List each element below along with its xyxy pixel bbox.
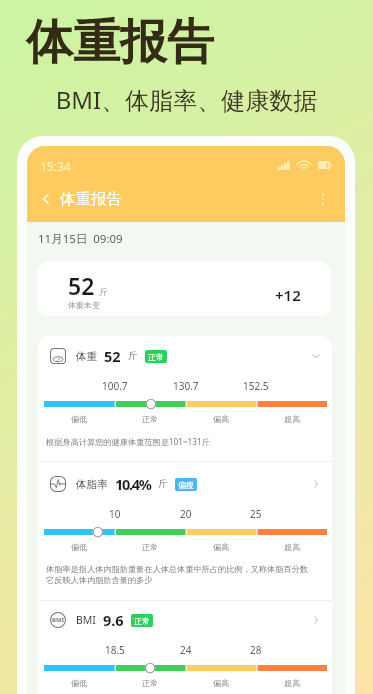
staticText: BMI、体脂率、健康数据 [0, 83, 373, 116]
staticText: 52 [104, 346, 121, 366]
other: Back [37, 190, 55, 208]
staticText: 斤 [158, 478, 168, 490]
button[interactable]: Back [37, 186, 122, 212]
staticText: BMI [52, 616, 64, 624]
staticText: 斤 [99, 287, 108, 298]
staticText: 20 [180, 507, 192, 521]
staticText: 偏低 [71, 678, 87, 688]
staticText: 体重报告 [26, 13, 214, 72]
staticText: 18.5 [105, 643, 125, 657]
staticText: 15:34 [40, 158, 71, 174]
staticText: 正常 [134, 616, 150, 626]
staticText: 超高 [284, 678, 300, 688]
staticText: 正常 [142, 414, 158, 424]
staticText: 体重 [76, 350, 97, 363]
staticText: 10.4% [115, 474, 151, 494]
staticText: +12 [275, 285, 301, 305]
staticText: 偏低 [71, 414, 87, 424]
staticText: BMI [76, 613, 96, 627]
staticText: 偏瘦 [178, 480, 194, 490]
staticText: 152.5 [243, 379, 269, 393]
staticText: 正常 [148, 352, 164, 362]
button[interactable]: 52 [37, 261, 331, 316]
staticText: 28 [250, 643, 262, 657]
staticText: 100.7 [102, 379, 128, 393]
button[interactable]: More options [312, 188, 334, 210]
staticText: 正常 [142, 542, 158, 552]
staticText: 根据身高计算您的健康体重范围是101~131斤 [46, 436, 331, 447]
staticText: 体脂率 [76, 478, 108, 491]
button[interactable]: BMI [38, 607, 332, 633]
staticText: 偏高 [213, 414, 229, 424]
staticText: 25 [250, 507, 262, 521]
staticText: 体重未变 [68, 300, 100, 310]
staticText: 24 [180, 643, 192, 657]
staticText: 52 [68, 270, 95, 301]
staticText: 130.7 [173, 379, 199, 393]
staticText: 体脂率是指人体内脂肪重量在人体总体重中所占的比例，又称体脂百分数 它反映人体内脂… [46, 564, 331, 586]
staticText: 体重报告 [60, 189, 122, 209]
staticText: 10 [109, 507, 121, 521]
button[interactable]: 体脂率 [38, 471, 332, 497]
staticText: 9.6 [103, 610, 124, 630]
staticText: 偏低 [71, 542, 87, 552]
staticText: 偏高 [213, 542, 229, 552]
staticText: 斤 [128, 350, 138, 362]
staticText: 超高 [284, 414, 300, 424]
button[interactable]: 体重 [38, 343, 332, 369]
staticText: 偏高 [213, 678, 229, 688]
staticText: 超高 [284, 542, 300, 552]
staticText: 11月15日 09:09 [38, 231, 123, 247]
staticText: 正常 [142, 678, 158, 688]
